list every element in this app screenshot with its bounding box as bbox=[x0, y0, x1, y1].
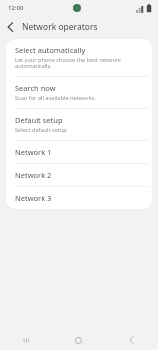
button[interactable]: Recent apps bbox=[0, 330, 52, 350]
staticText: Network operators bbox=[22, 21, 98, 33]
button[interactable]: Back bbox=[105, 330, 158, 350]
staticText: Network 3 bbox=[15, 193, 52, 203]
button[interactable]: Default setup bbox=[6, 109, 152, 140]
staticText: 12:00 bbox=[8, 4, 24, 12]
button[interactable]: Network 3 bbox=[6, 187, 152, 209]
staticText: Network 1 bbox=[15, 147, 52, 157]
button[interactable]: Network 2 bbox=[6, 164, 152, 186]
button[interactable]: Back bbox=[0, 17, 20, 37]
staticText: Let your phone choose the best network a… bbox=[15, 56, 122, 70]
staticText: Scan for all available networks. bbox=[15, 94, 96, 102]
button[interactable]: Home bbox=[52, 330, 105, 350]
button[interactable]: Select automatically bbox=[6, 39, 152, 76]
staticText: Default setup bbox=[15, 115, 63, 125]
staticText: Select default setup bbox=[15, 126, 67, 134]
staticText: Network 2 bbox=[15, 170, 52, 180]
button[interactable]: Network 1 bbox=[6, 141, 152, 163]
button[interactable]: Search now bbox=[6, 77, 152, 108]
staticText: Select automatically bbox=[15, 45, 86, 55]
staticText: Search now bbox=[15, 83, 56, 93]
